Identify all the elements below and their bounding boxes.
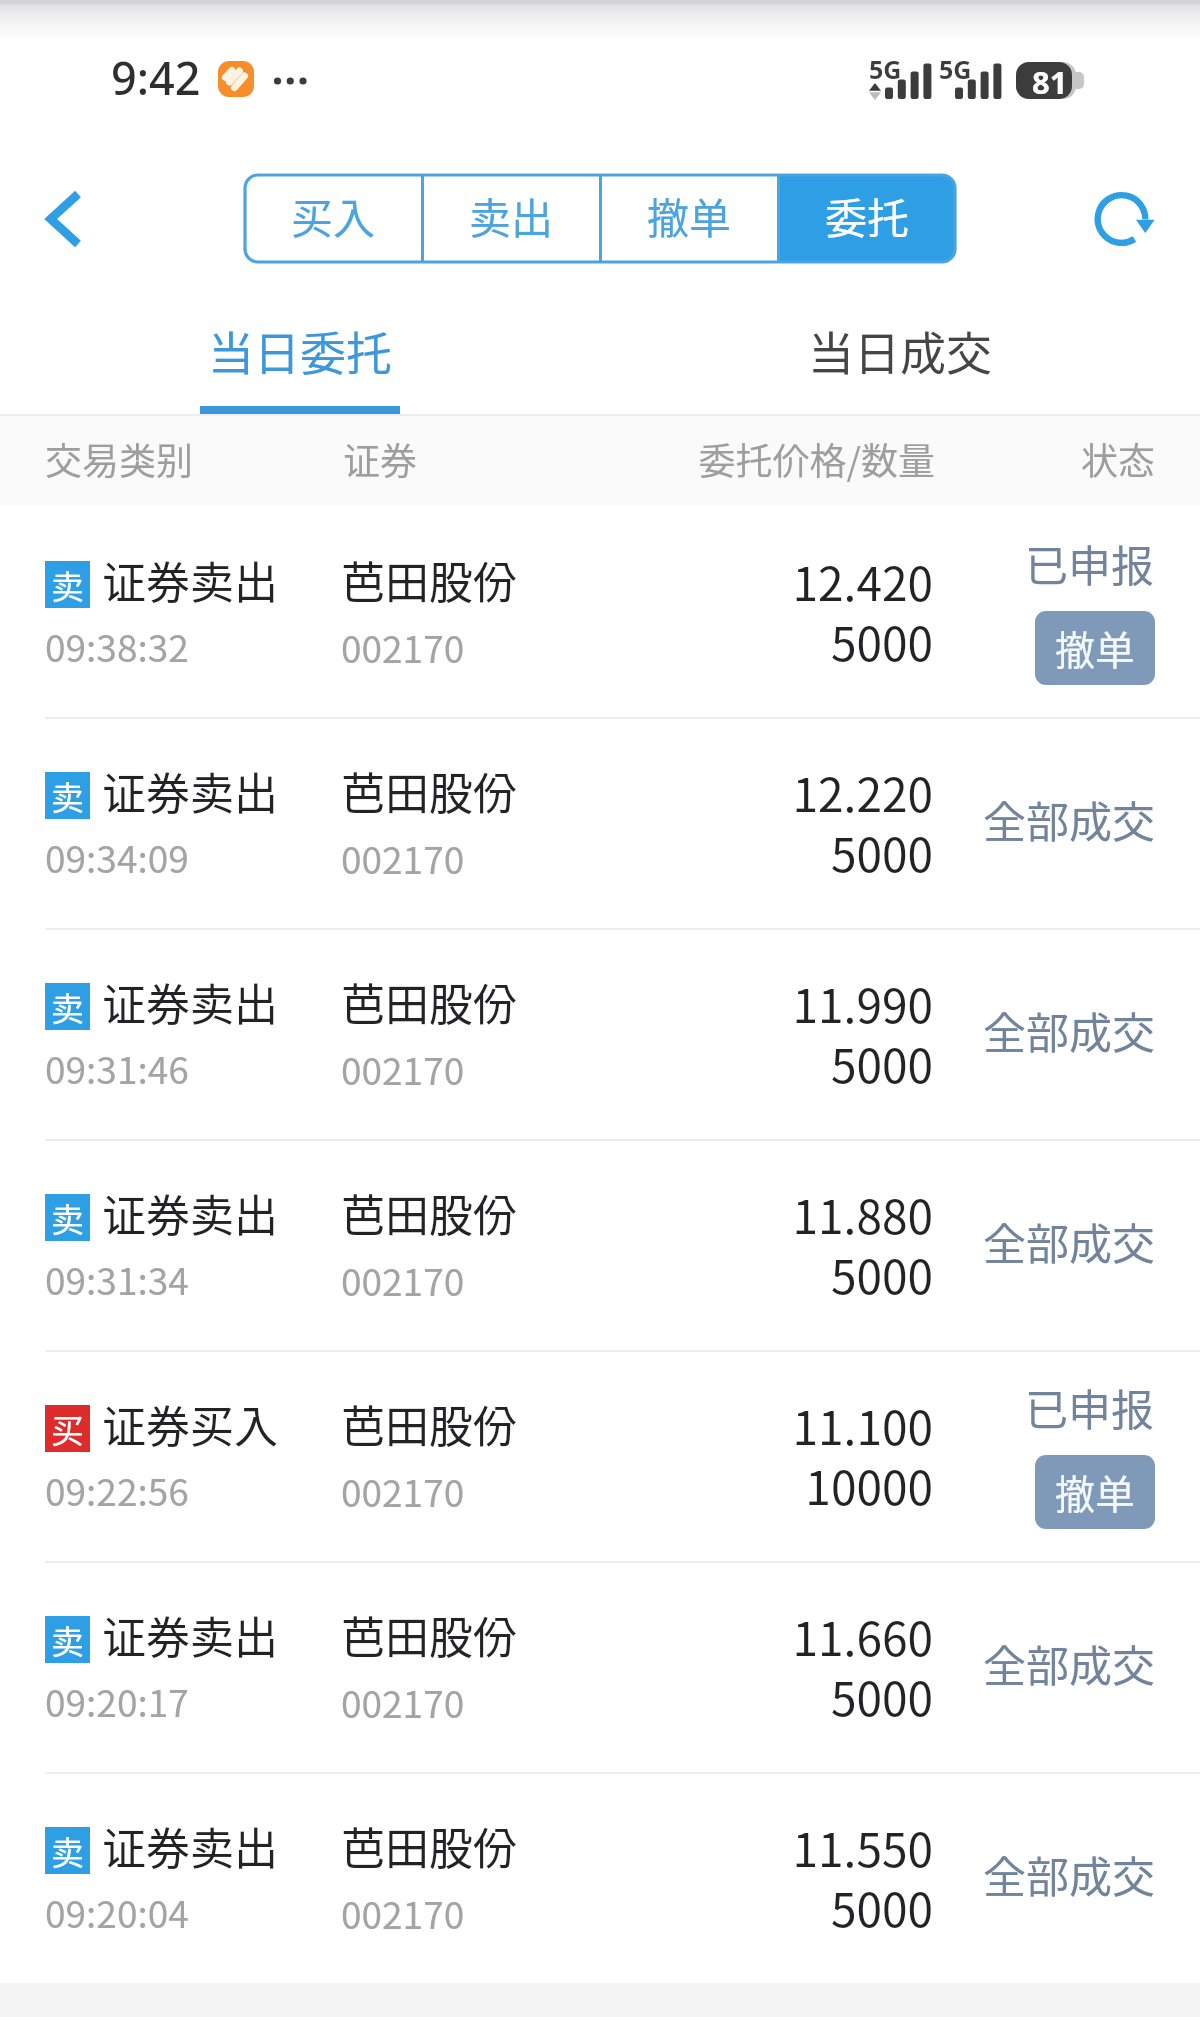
staticText: 买入 bbox=[291, 185, 376, 246]
button[interactable]: 买入 bbox=[245, 175, 421, 262]
button[interactable]: 卖 bbox=[0, 1771, 1200, 1982]
staticText: 002170 bbox=[341, 1042, 465, 1096]
staticText: 撤单 bbox=[1055, 619, 1135, 677]
staticText: 撤单 bbox=[1055, 1463, 1135, 1521]
staticText: 5000 bbox=[600, 1663, 933, 1730]
button[interactable]: 卖 bbox=[0, 505, 1200, 716]
staticText: 5000 bbox=[600, 608, 933, 675]
button[interactable]: Back bbox=[10, 164, 120, 274]
staticText: 002170 bbox=[341, 620, 465, 674]
staticText: 12.220 bbox=[600, 759, 933, 826]
staticText: 002170 bbox=[341, 1464, 465, 1518]
staticText: 11.550 bbox=[600, 1814, 933, 1881]
staticText: 09:22:56 bbox=[45, 1463, 189, 1517]
button[interactable]: 当日成交 bbox=[600, 290, 1200, 414]
staticText: 5000 bbox=[600, 1030, 933, 1097]
staticText: 状态 bbox=[960, 432, 1155, 486]
staticText: 卖 bbox=[51, 1194, 84, 1241]
staticText: 委托价格/数量 bbox=[640, 432, 935, 486]
staticText: 芭田股份 bbox=[341, 548, 517, 612]
staticText: 09:31:46 bbox=[45, 1041, 189, 1095]
staticText: 证券卖出 bbox=[102, 759, 278, 823]
staticText: 09:31:34 bbox=[45, 1252, 189, 1306]
staticText: 09:20:04 bbox=[45, 1885, 189, 1939]
staticText: 5000 bbox=[600, 1874, 933, 1941]
staticText: 卖 bbox=[51, 983, 84, 1030]
staticText: 芭田股份 bbox=[341, 1814, 517, 1878]
staticText: 10000 bbox=[600, 1452, 933, 1519]
staticText: 芭田股份 bbox=[341, 1392, 517, 1456]
staticText: 全部成交 bbox=[940, 1843, 1155, 1905]
button[interactable]: 卖 bbox=[0, 1560, 1200, 1771]
button[interactable]: 撤单 bbox=[1035, 1455, 1155, 1529]
staticText: 002170 bbox=[341, 1253, 465, 1307]
staticText: 11.100 bbox=[600, 1392, 933, 1459]
button[interactable]: 撤单 bbox=[1035, 611, 1155, 685]
staticText: 002170 bbox=[341, 1886, 465, 1940]
staticText: 芭田股份 bbox=[341, 1181, 517, 1245]
button[interactable]: 卖 bbox=[0, 1138, 1200, 1349]
staticText: 11.880 bbox=[600, 1181, 933, 1248]
staticText: 卖 bbox=[51, 772, 84, 819]
staticText: 证券买入 bbox=[102, 1392, 278, 1456]
staticText: 09:38:32 bbox=[45, 619, 189, 673]
staticText: 12.420 bbox=[600, 548, 933, 615]
staticText: 11.660 bbox=[600, 1603, 933, 1670]
staticText: 证券卖出 bbox=[102, 970, 278, 1034]
button[interactable]: Refresh bbox=[1065, 163, 1175, 273]
staticText: 委托 bbox=[825, 185, 910, 246]
staticText: 撤单 bbox=[647, 185, 732, 246]
staticText: 交易类别 bbox=[45, 432, 193, 486]
staticText: 芭田股份 bbox=[341, 759, 517, 823]
staticText: 已申报 bbox=[960, 1376, 1154, 1438]
staticText: 当日委托 bbox=[208, 317, 392, 384]
button[interactable]: 卖出 bbox=[424, 175, 599, 262]
staticText: 证券 bbox=[343, 432, 417, 486]
button[interactable]: 委托 bbox=[780, 175, 955, 262]
staticText: 9:42 bbox=[111, 47, 201, 108]
staticText: 证券卖出 bbox=[102, 548, 278, 612]
staticText: 002170 bbox=[341, 831, 465, 885]
staticText: 5G bbox=[939, 52, 972, 86]
staticText: 5000 bbox=[600, 1241, 933, 1308]
staticText: 芭田股份 bbox=[341, 970, 517, 1034]
staticText: 5G bbox=[869, 52, 902, 86]
staticText: 已申报 bbox=[960, 532, 1154, 594]
staticText: 11.990 bbox=[600, 970, 933, 1037]
staticText: 81 bbox=[1032, 62, 1068, 98]
staticText: 证券卖出 bbox=[102, 1181, 278, 1245]
staticText: 卖 bbox=[51, 561, 84, 608]
staticText: 证券卖出 bbox=[102, 1603, 278, 1667]
staticText: 全部成交 bbox=[940, 1210, 1155, 1272]
staticText: 证券卖出 bbox=[102, 1814, 278, 1878]
button[interactable]: 卖 bbox=[0, 716, 1200, 927]
staticText: 卖 bbox=[51, 1827, 84, 1874]
button[interactable]: 买 bbox=[0, 1349, 1200, 1560]
staticText: 09:20:17 bbox=[45, 1674, 189, 1728]
staticText: 芭田股份 bbox=[341, 1603, 517, 1667]
staticText: 全部成交 bbox=[940, 788, 1155, 850]
button[interactable]: 撤单 bbox=[602, 175, 777, 262]
staticText: 卖出 bbox=[469, 185, 554, 246]
staticText: 全部成交 bbox=[940, 999, 1155, 1061]
staticText: 002170 bbox=[341, 1675, 465, 1729]
staticText: 全部成交 bbox=[940, 1632, 1155, 1694]
button[interactable]: 当日委托 bbox=[0, 290, 600, 414]
staticText: 卖 bbox=[51, 1616, 84, 1663]
staticText: 当日成交 bbox=[808, 317, 992, 384]
button[interactable]: 卖 bbox=[0, 927, 1200, 1138]
staticText: 09:34:09 bbox=[45, 830, 189, 884]
staticText: 5000 bbox=[600, 819, 933, 886]
staticText: 买 bbox=[51, 1405, 84, 1452]
